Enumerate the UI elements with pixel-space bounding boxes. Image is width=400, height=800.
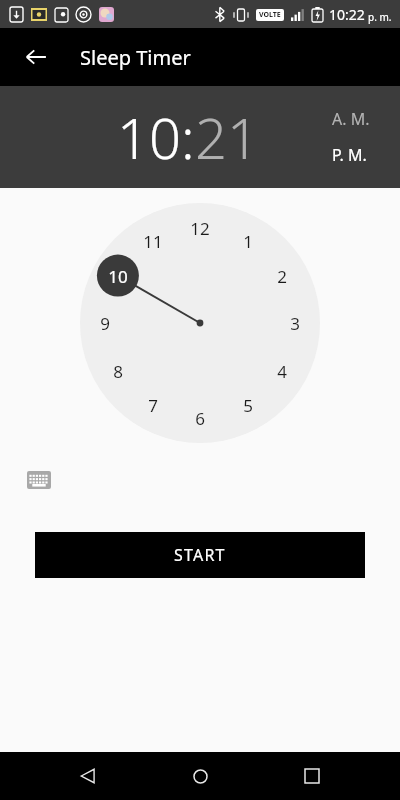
staticText: 11 [143, 230, 163, 253]
staticText: 6 [195, 407, 205, 430]
staticText: 3 [290, 312, 300, 335]
button[interactable]: 21 [195, 99, 259, 175]
button[interactable]: Back [64, 752, 112, 800]
button[interactable]: 10 [117, 99, 181, 175]
staticText: Sleep Timer [80, 44, 191, 71]
staticText: P. M. [332, 144, 367, 166]
button[interactable]: Home [176, 752, 224, 800]
staticText: 12 [190, 217, 210, 240]
staticText: VOLTE [259, 10, 281, 20]
staticText: 2 [277, 265, 287, 288]
button[interactable]: 1 [80, 203, 320, 443]
button[interactable]: Switch to text input [26, 470, 52, 490]
staticText: A. M. [332, 108, 370, 130]
button[interactable]: START [35, 532, 365, 578]
button[interactable]: P. M. [332, 144, 367, 166]
staticText: p. m. [368, 10, 392, 24]
button[interactable]: A. M. [332, 108, 370, 130]
staticText: 7 [148, 394, 158, 417]
staticText: 5 [243, 394, 253, 417]
button[interactable]: Recent apps [288, 752, 336, 800]
staticText: START [174, 544, 226, 566]
staticText: 10 [108, 265, 128, 288]
staticText: 9 [100, 312, 110, 335]
staticText: : [181, 99, 195, 175]
button[interactable]: Back [12, 33, 60, 81]
staticText: 1 [243, 230, 253, 253]
staticText: 4 [277, 360, 287, 383]
staticText: 8 [113, 360, 123, 383]
staticText: 10:22 [329, 5, 365, 24]
